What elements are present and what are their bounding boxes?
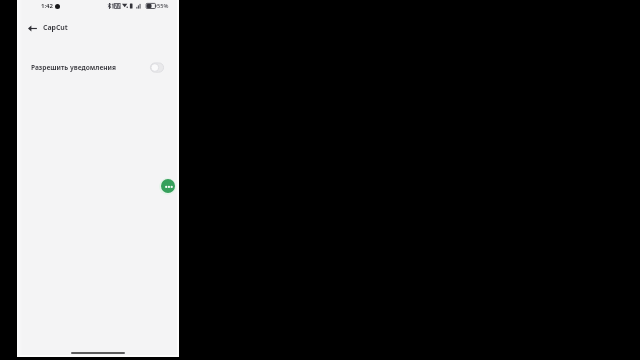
- staticText: 1:42: [41, 2, 53, 10]
- button[interactable]: Разрешить уведомления: [18, 55, 177, 80]
- button[interactable]: Allow notifications toggle: [150, 62, 164, 73]
- button[interactable]: Back: [22, 18, 43, 39]
- button[interactable]: More options: [161, 179, 175, 193]
- staticText: 55%: [157, 2, 169, 10]
- staticText: Разрешить уведомления: [31, 63, 116, 72]
- staticText: CapCut: [43, 23, 68, 32]
